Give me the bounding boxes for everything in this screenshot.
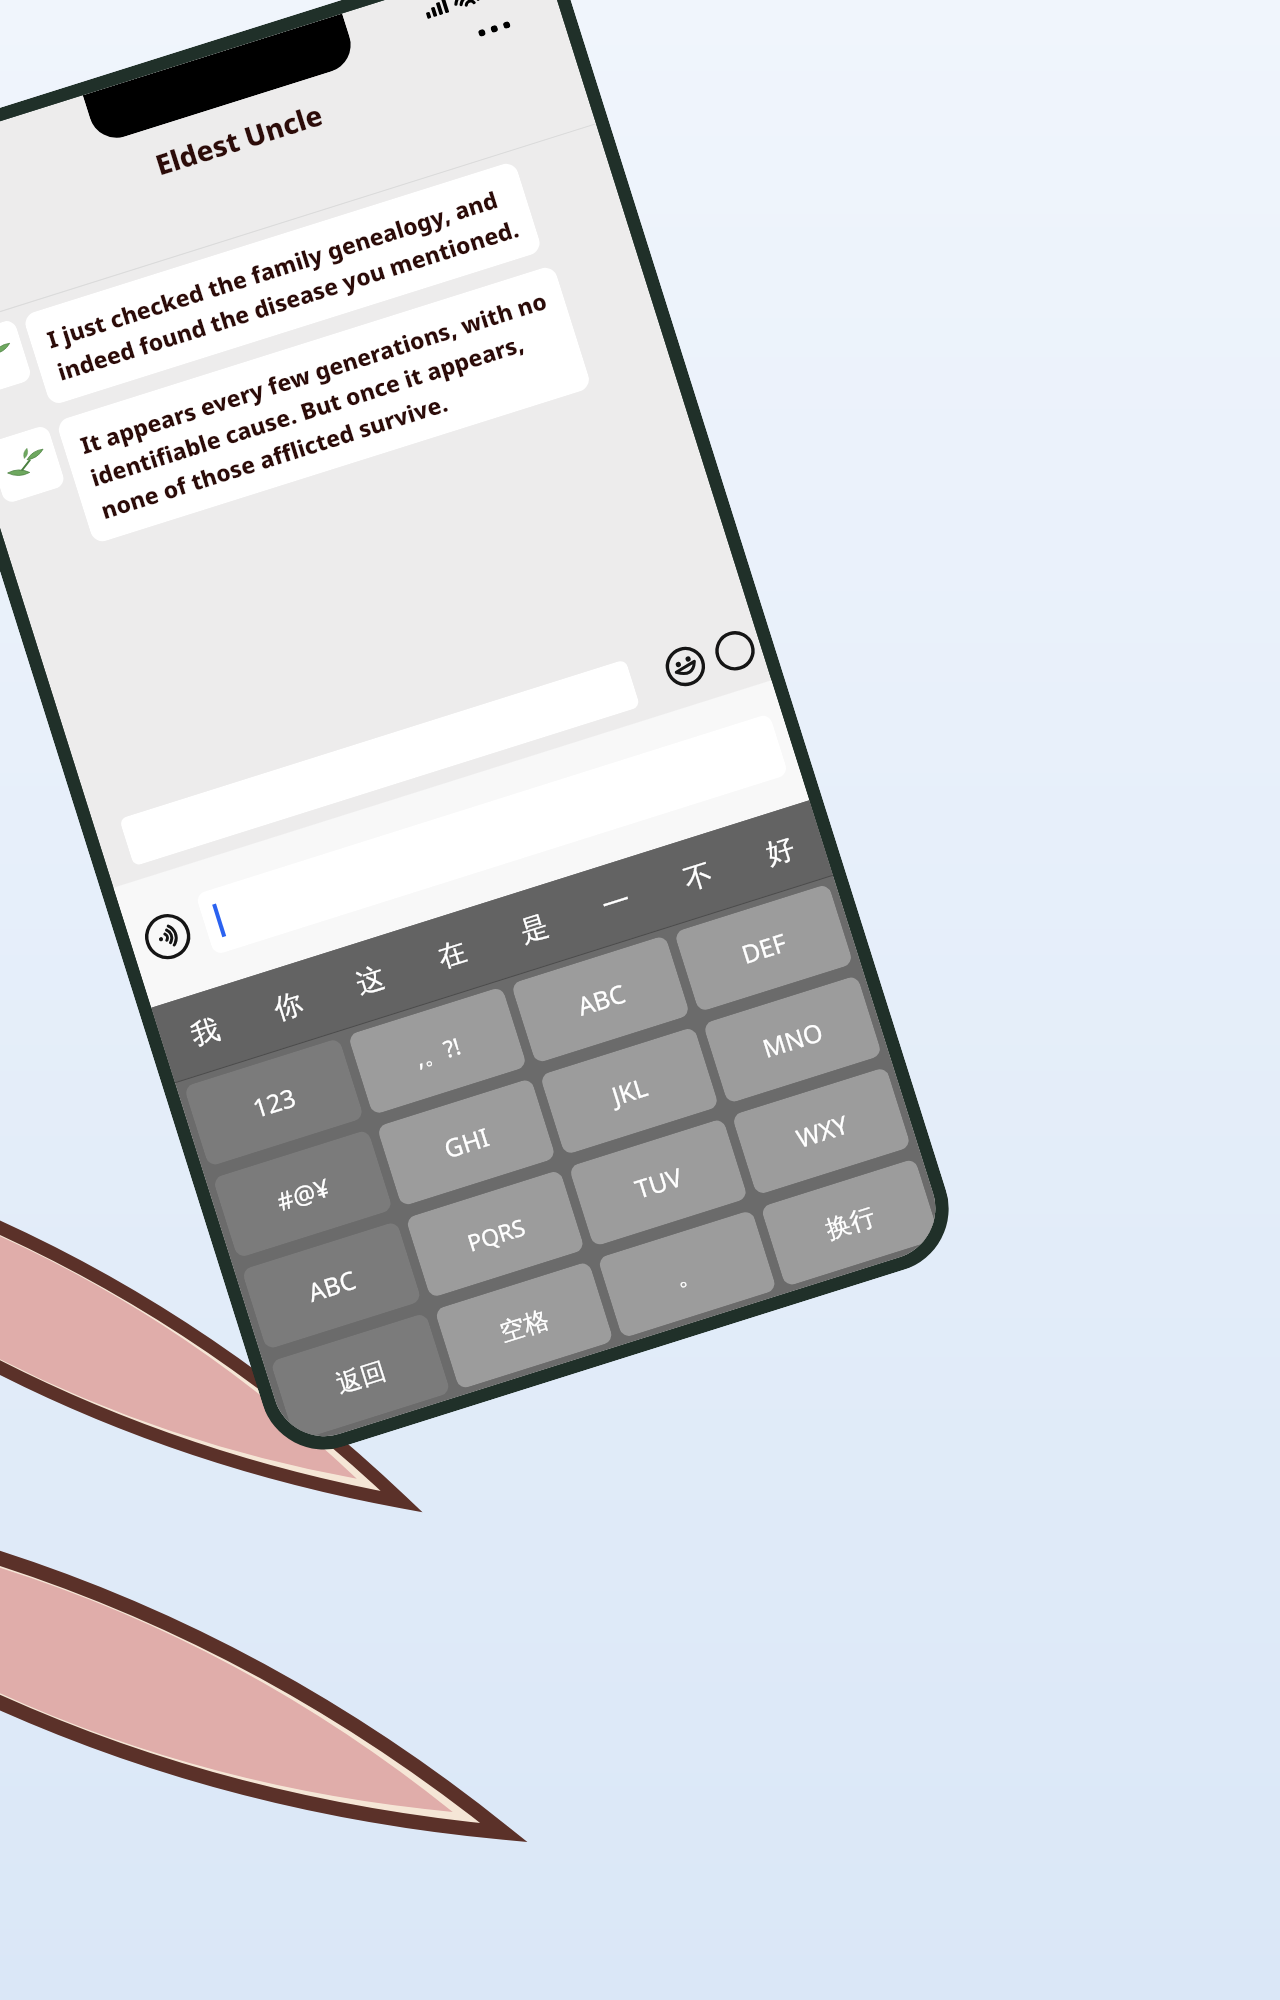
button[interactable]: 是 — [481, 878, 587, 978]
staticText: 是 — [516, 908, 553, 949]
staticText: 不 — [680, 856, 717, 898]
button[interactable]: 一 — [563, 852, 669, 952]
staticText: 。 — [671, 1256, 704, 1293]
staticText: ABC — [573, 976, 630, 1023]
button[interactable]: JKL — [539, 1026, 719, 1155]
button[interactable]: Voice input — [136, 905, 199, 968]
button[interactable]: Emoji — [653, 634, 718, 699]
staticText: WXY — [791, 1107, 852, 1155]
staticText: 我 — [186, 1011, 224, 1053]
button[interactable]: More options — [702, 618, 768, 683]
button[interactable]: ABC — [511, 935, 690, 1064]
staticText: JKL — [607, 1069, 652, 1113]
button[interactable]: Contact avatar — [0, 318, 33, 399]
staticText: 一 — [598, 882, 635, 924]
staticText: 你 — [269, 985, 307, 1027]
staticText: 返回 — [333, 1355, 390, 1400]
staticText: Eldest Uncle — [150, 95, 328, 183]
staticText: ,。?! — [411, 1030, 464, 1073]
staticText: MNO — [758, 1014, 827, 1065]
staticText: TUV — [630, 1159, 686, 1206]
staticText: 这 — [351, 959, 389, 1001]
button[interactable]: It appears every few generations, with n… — [56, 264, 592, 544]
button[interactable]: WXY — [731, 1067, 911, 1195]
button[interactable]: 。 — [597, 1210, 777, 1338]
staticText: 换行 — [822, 1201, 879, 1245]
staticText: 空格 — [496, 1304, 553, 1348]
staticText: 123 — [248, 1080, 299, 1125]
button[interactable]: 这 — [317, 930, 423, 1030]
button[interactable]: 123 — [184, 1038, 364, 1167]
staticText: DEF — [737, 925, 791, 971]
staticText: 在 — [434, 933, 471, 975]
button[interactable]: 好 — [727, 800, 833, 901]
button[interactable]: MNO — [703, 975, 882, 1104]
button[interactable]: ABC — [241, 1221, 422, 1350]
button[interactable]: 在 — [399, 904, 505, 1004]
button[interactable]: 空格 — [434, 1261, 614, 1390]
button[interactable]: 我 — [151, 982, 258, 1082]
button[interactable]: 不 — [645, 826, 751, 926]
staticText: ABC — [303, 1262, 360, 1309]
button[interactable]: 换行 — [760, 1158, 940, 1287]
button[interactable]: PQRS — [405, 1169, 585, 1298]
button[interactable]: I just checked the family genealogy, and… — [22, 160, 543, 406]
staticText: PQRS — [463, 1211, 529, 1258]
button[interactable] — [119, 659, 640, 866]
staticText: I just checked the family genealogy, and… — [43, 180, 522, 387]
button[interactable]: 你 — [234, 955, 341, 1056]
button[interactable] — [195, 713, 789, 955]
button[interactable]: 返回 — [270, 1312, 451, 1442]
staticText: It appears every few generations, with n… — [76, 284, 571, 525]
button[interactable]: Contact avatar — [0, 424, 66, 504]
button[interactable]: DEF — [674, 883, 854, 1012]
staticText: GHI — [439, 1119, 493, 1165]
button[interactable]: TUV — [568, 1118, 748, 1247]
staticText: #@¥ — [272, 1170, 333, 1218]
button[interactable]: ,。?! — [348, 986, 527, 1115]
staticText: 好 — [762, 830, 799, 872]
button[interactable]: GHI — [376, 1078, 556, 1207]
button[interactable]: #@¥ — [212, 1129, 393, 1258]
